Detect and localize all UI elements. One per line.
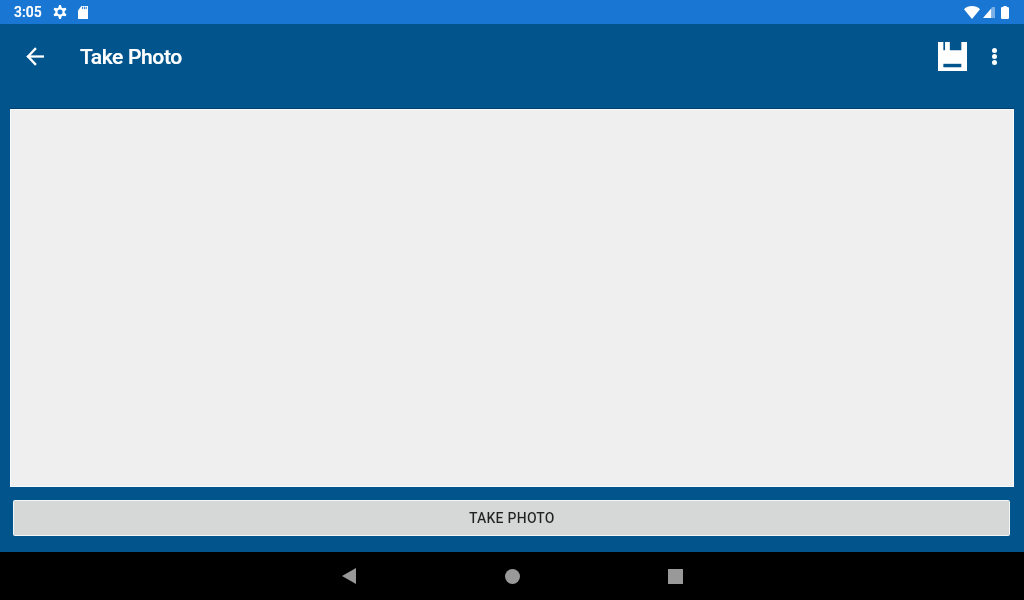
button[interactable]: Recents [651,552,699,600]
button[interactable]: Back [11,32,59,80]
staticText: Take Photo [80,45,182,70]
button[interactable]: More options [973,32,1015,80]
button[interactable]: Save [932,32,973,80]
staticText: 3:05 [14,4,42,20]
button[interactable]: TAKE PHOTO [14,501,1009,535]
staticText: TAKE PHOTO [469,510,555,526]
button[interactable]: Home [488,552,536,600]
button[interactable]: Back [325,552,373,600]
